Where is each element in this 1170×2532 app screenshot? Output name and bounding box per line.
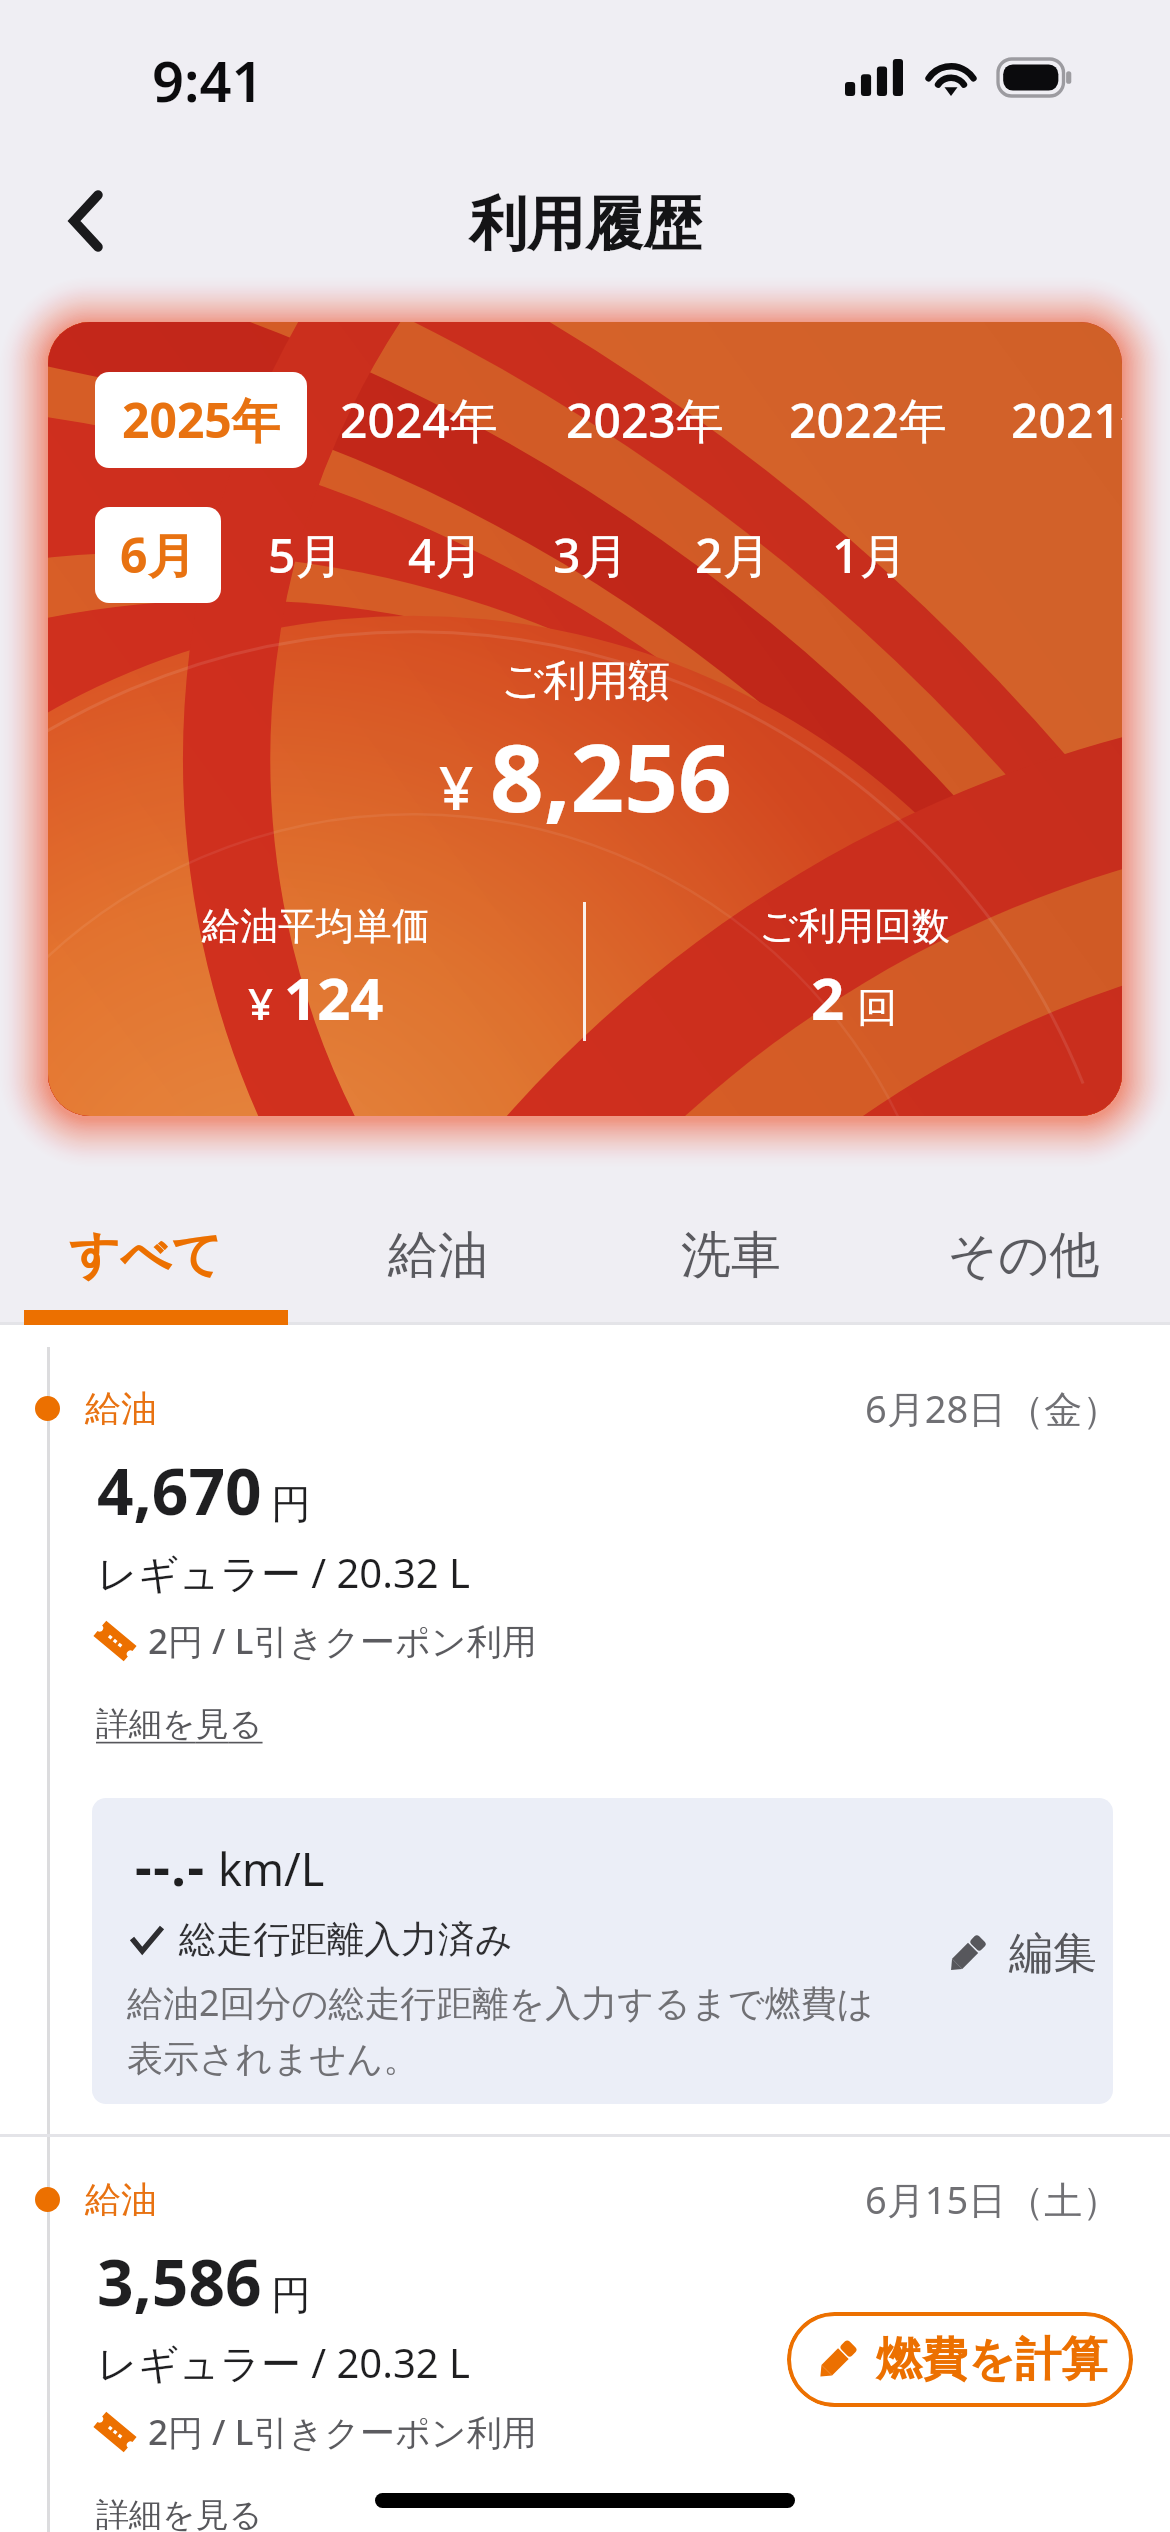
staticText: 2 xyxy=(811,958,845,1037)
staticText: 1月 xyxy=(832,522,908,588)
button[interactable]: 1月 xyxy=(807,507,933,603)
staticText: その他 xyxy=(947,1224,1100,1287)
staticText: 円 xyxy=(271,2270,311,2320)
staticText: すべて xyxy=(69,1224,223,1287)
button[interactable]: 2025年 xyxy=(95,372,307,468)
staticText: 給油 xyxy=(388,1224,488,1287)
staticText: 9:41 xyxy=(152,42,264,118)
button[interactable]: 2022年 xyxy=(762,372,974,468)
staticText: 4月 xyxy=(408,522,484,588)
button[interactable]: 燃費を計算 xyxy=(787,2312,1133,2407)
button[interactable]: 2月 xyxy=(670,507,796,603)
staticText: 2月 xyxy=(695,522,771,588)
staticText: 2円 / L引きクーポン利用 xyxy=(148,1617,537,1665)
staticText: 2022年 xyxy=(789,387,947,453)
staticText: 6月28日（金） xyxy=(865,1382,1121,1434)
button[interactable]: 2025年 xyxy=(48,322,1122,1116)
button[interactable]: 給油 xyxy=(292,1185,584,1325)
staticText: 洗車 xyxy=(681,1224,781,1287)
button[interactable]: 2023年 xyxy=(539,372,751,468)
staticText: レギュラー / 20.32 L xyxy=(97,2335,471,2390)
button[interactable]: すべて xyxy=(0,1185,292,1325)
button[interactable]: 詳細を見る xyxy=(96,2494,263,2532)
button[interactable]: Back xyxy=(31,166,141,276)
button[interactable]: 6月 xyxy=(95,507,221,603)
button[interactable] xyxy=(0,1347,1170,2134)
staticText: 3月 xyxy=(553,522,629,588)
staticText: 4,670 xyxy=(97,1447,262,1534)
staticText: 6月15日（土） xyxy=(865,2173,1121,2225)
button[interactable]: 編集 xyxy=(943,1926,1097,1981)
staticText: ¥ xyxy=(439,746,474,828)
staticText: 5月 xyxy=(268,522,344,588)
staticText: 給油 xyxy=(85,1386,157,1431)
staticText: 6月 xyxy=(120,522,196,588)
staticText: 2024年 xyxy=(340,387,498,453)
staticText: 8,256 xyxy=(490,712,732,840)
button[interactable]: 5月 xyxy=(243,507,369,603)
staticText: 3,586 xyxy=(97,2238,262,2325)
staticText: km/L xyxy=(218,1838,325,1899)
button[interactable]: 3月 xyxy=(528,507,654,603)
staticText: レギュラー / 20.32 L xyxy=(97,1545,471,1600)
button[interactable]: 2024年 xyxy=(313,372,525,468)
staticText: 回 xyxy=(857,982,897,1032)
staticText: 給油平均単価 xyxy=(202,902,430,950)
button[interactable]: 洗車 xyxy=(584,1185,877,1325)
button[interactable]: 2021年 xyxy=(984,372,1122,468)
staticText: 燃費を計算 xyxy=(876,2331,1108,2389)
staticText: 2円 / L引きクーポン利用 xyxy=(148,2408,537,2456)
staticText: ¥ xyxy=(248,973,274,1033)
button[interactable]: 4月 xyxy=(383,507,509,603)
button[interactable] xyxy=(0,2137,1170,2532)
staticText: ご利用額 xyxy=(501,655,670,708)
staticText: ご利用回数 xyxy=(759,902,950,950)
staticText: 総走行距離入力済み xyxy=(179,1916,513,1963)
staticText: --.- xyxy=(135,1830,206,1901)
button[interactable]: 詳細を見る xyxy=(96,1703,263,1745)
staticText: 円 xyxy=(271,1479,311,1529)
staticText: 給油 xyxy=(85,2177,157,2222)
staticText: 2021年 xyxy=(1011,387,1122,453)
staticText: 給油2回分の総走行距離を入力するまで燃費は 表示されません。 xyxy=(127,1978,874,2082)
staticText: 2023年 xyxy=(566,387,724,453)
button[interactable]: その他 xyxy=(877,1185,1170,1325)
staticText: 124 xyxy=(284,958,384,1037)
staticText: 編集 xyxy=(1009,1926,1097,1981)
staticText: 2025年 xyxy=(122,387,280,453)
staticText: 利用履歴 xyxy=(469,188,701,261)
